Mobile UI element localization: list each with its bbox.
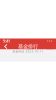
staticText: 基金排行 — [18, 43, 38, 50]
button[interactable]: Back — [2, 43, 10, 49]
staticText: 更新时间 2023-10-11 — [12, 50, 43, 53]
staticText: 9:41 — [3, 38, 10, 44]
staticText: ••• — [47, 38, 53, 44]
